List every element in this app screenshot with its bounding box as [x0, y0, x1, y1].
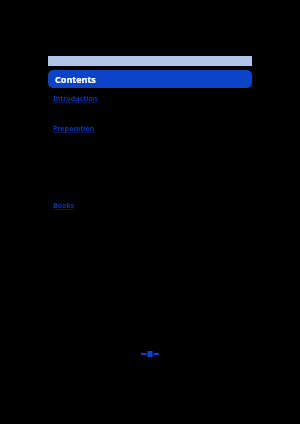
staticText: Contents [55, 73, 96, 85]
button[interactable]: Page marker [138, 348, 162, 360]
button[interactable]: Preparation [52, 123, 96, 135]
staticText: Books [53, 201, 75, 211]
staticText: Preparation [53, 124, 95, 134]
button[interactable]: Introduction [52, 93, 99, 105]
button[interactable]: Books [52, 200, 76, 212]
staticText: Introduction [53, 94, 98, 104]
button[interactable]: Contents [48, 70, 252, 88]
